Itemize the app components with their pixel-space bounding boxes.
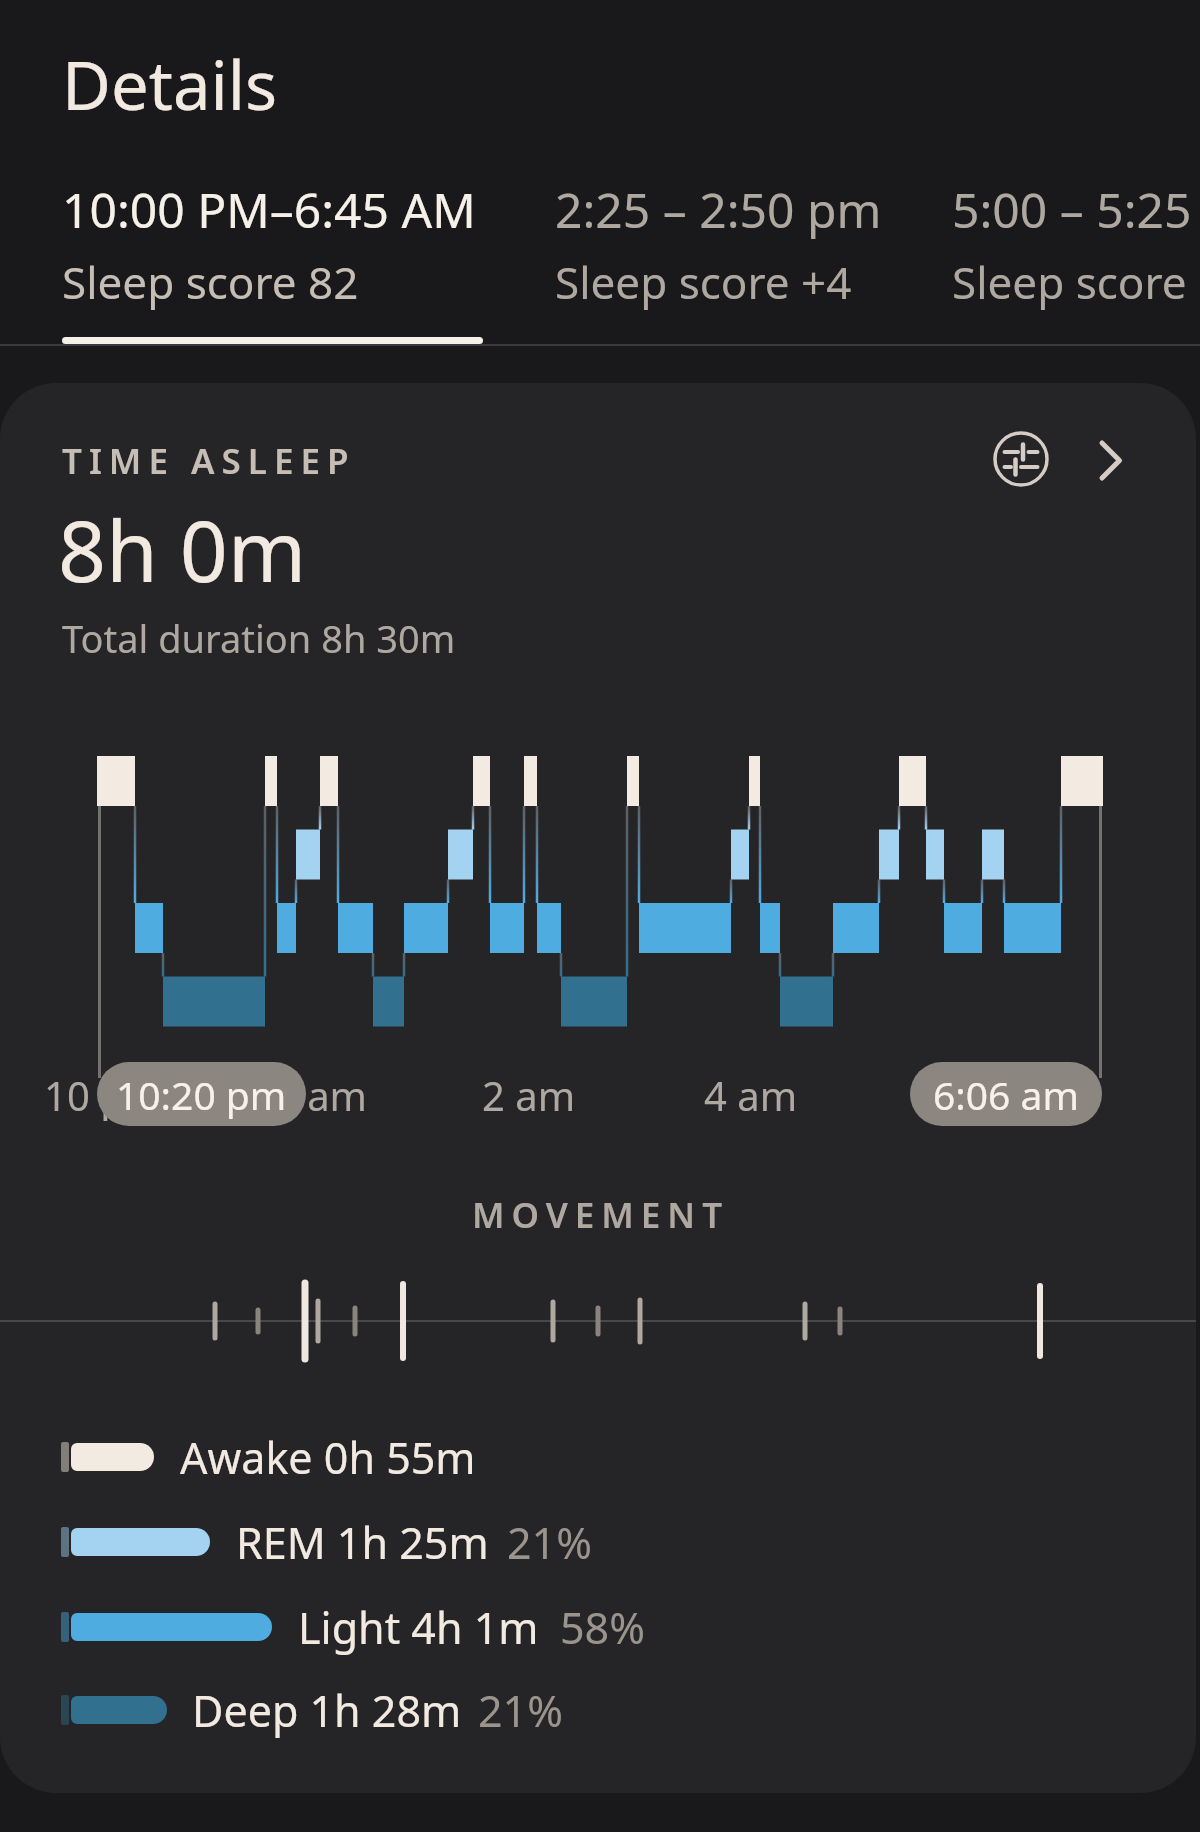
staticText: Light 4h 1m — [298, 1598, 539, 1657]
staticText: 10:20 pm — [116, 1068, 287, 1121]
staticText: 58% — [560, 1598, 645, 1657]
staticText: Sleep score +4 — [555, 252, 852, 312]
staticText: 21% — [478, 1681, 563, 1740]
button[interactable] — [986, 424, 1056, 494]
staticText: Awake 0h 55m — [180, 1428, 476, 1487]
staticText: REM 1h 25m — [236, 1513, 489, 1572]
staticText: 10 pm — [44, 1068, 163, 1122]
staticText: Sleep score +2 — [952, 252, 1200, 312]
button[interactable]: 10:00 PM–6:45 AM — [40, 165, 510, 350]
staticText: 4 am — [704, 1068, 798, 1122]
staticText: 6:06 am — [933, 1068, 1079, 1121]
staticText: Details — [62, 38, 278, 129]
staticText: 8h 0m — [58, 492, 307, 606]
staticText: 2:25 – 2:50 pm — [555, 177, 882, 242]
staticText: Total duration 8h 30m — [62, 612, 456, 664]
staticText: Sleep score 82 — [62, 252, 359, 312]
button[interactable]: 5:00 – 5:25 pm — [930, 165, 1200, 350]
staticText: 2 am — [482, 1068, 576, 1122]
staticText: TIME ASLEEP — [62, 437, 356, 485]
staticText: 5:00 – 5:25 pm — [952, 177, 1200, 242]
staticText: Deep 1h 28m — [192, 1681, 462, 1740]
staticText: 10:00 PM–6:45 AM — [62, 177, 476, 242]
staticText: 12 am — [251, 1068, 367, 1122]
button[interactable]: 2:25 – 2:50 pm — [535, 165, 935, 350]
staticText: MOVEMENT — [472, 1191, 730, 1239]
staticText: 21% — [507, 1513, 592, 1572]
button[interactable] — [1081, 430, 1141, 490]
